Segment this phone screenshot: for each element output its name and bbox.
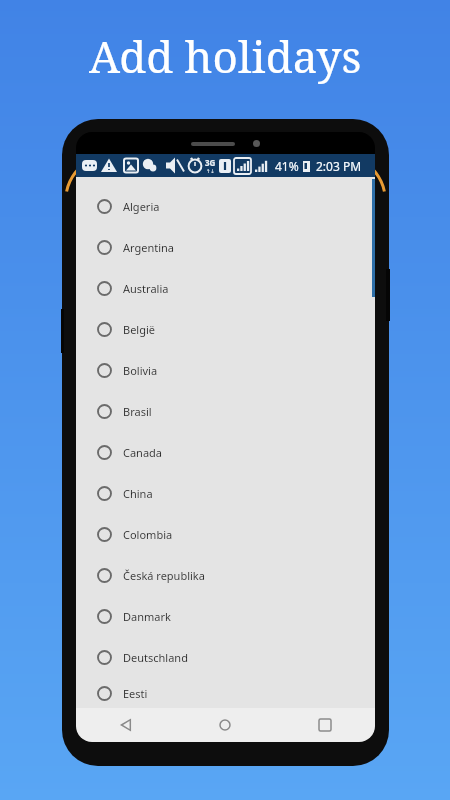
staticText: Eesti (123, 686, 148, 701)
button[interactable]: China (76, 473, 375, 514)
staticText: 3G (205, 157, 216, 168)
staticText: ↑↓ (206, 168, 215, 174)
button[interactable]: Eesti (76, 678, 375, 708)
button[interactable]: Danmark (76, 596, 375, 637)
staticText: Australia (123, 281, 169, 296)
staticText: Add holidays (89, 26, 362, 86)
staticText: Brasil (123, 404, 152, 419)
staticText: Danmark (123, 609, 171, 624)
button[interactable]: Back (76, 708, 175, 742)
button[interactable]: België (76, 309, 375, 350)
button[interactable]: Canada (76, 432, 375, 473)
staticText: Colombia (123, 527, 173, 542)
button[interactable]: Algeria (76, 186, 375, 227)
button[interactable]: Brasil (76, 391, 375, 432)
button[interactable]: Home (175, 708, 275, 742)
button[interactable]: Recent apps (275, 708, 375, 742)
button[interactable]: Bolivia (76, 350, 375, 391)
staticText: Deutschland (123, 650, 188, 665)
staticText: Česká republika (123, 568, 205, 583)
staticText: Bolivia (123, 363, 158, 378)
button[interactable]: Australia (76, 268, 375, 309)
staticText: China (123, 486, 153, 501)
button[interactable]: Česká republika (76, 555, 375, 596)
button[interactable]: Deutschland (76, 637, 375, 678)
button[interactable]: Argentina (76, 227, 375, 268)
staticText: 41% (275, 158, 299, 174)
staticText: Algeria (123, 199, 160, 214)
staticText: 2:03 PM (316, 158, 362, 174)
staticText: Canada (123, 445, 163, 460)
staticText: België (123, 322, 155, 337)
button[interactable]: Colombia (76, 514, 375, 555)
staticText: Argentina (123, 240, 175, 255)
